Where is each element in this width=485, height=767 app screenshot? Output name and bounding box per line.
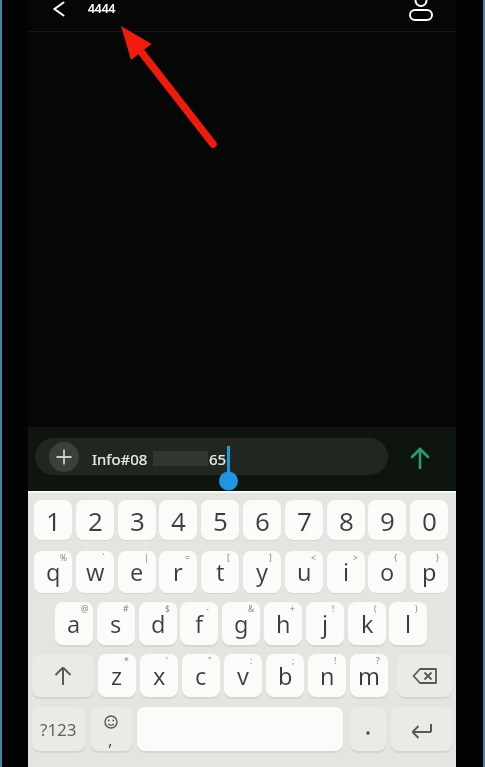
button[interactable] bbox=[397, 654, 452, 697]
button[interactable] bbox=[350, 707, 386, 751]
staticText: x bbox=[153, 660, 166, 692]
button[interactable]: w bbox=[76, 551, 114, 593]
staticText: ! bbox=[332, 603, 335, 615]
staticText: a bbox=[67, 608, 81, 640]
button[interactable]: s bbox=[97, 602, 135, 645]
staticText: > bbox=[353, 552, 358, 564]
button[interactable]: h bbox=[264, 602, 302, 645]
staticText: | bbox=[144, 552, 149, 564]
button[interactable] bbox=[391, 707, 452, 751]
staticText: 0 bbox=[422, 503, 437, 538]
button[interactable]: n bbox=[308, 654, 346, 697]
staticText: + bbox=[290, 603, 295, 615]
button[interactable] bbox=[32, 654, 94, 697]
staticText: * bbox=[124, 655, 129, 667]
staticText: i bbox=[343, 556, 350, 588]
button[interactable]: y bbox=[243, 551, 281, 593]
button[interactable] bbox=[406, 444, 434, 472]
staticText: } bbox=[436, 552, 440, 564]
button[interactable]: b bbox=[266, 654, 304, 697]
button[interactable]: d bbox=[139, 602, 177, 645]
button[interactable]: i bbox=[327, 551, 365, 593]
button[interactable]: a bbox=[55, 602, 93, 645]
button[interactable]: 5 bbox=[201, 500, 239, 540]
button[interactable]: 9 bbox=[368, 500, 406, 540]
staticText: f bbox=[195, 608, 204, 640]
staticText: ] bbox=[269, 552, 272, 564]
button[interactable] bbox=[50, 0, 70, 20]
staticText: 4444 bbox=[88, 0, 116, 16]
staticText: h bbox=[276, 608, 291, 640]
staticText: t bbox=[216, 556, 225, 588]
staticText: 4 bbox=[171, 503, 186, 538]
staticText: z bbox=[111, 660, 123, 692]
button[interactable]: 6 bbox=[243, 500, 281, 540]
staticText: ! bbox=[334, 655, 337, 667]
button[interactable]: 7 bbox=[285, 500, 323, 540]
staticText: " bbox=[208, 655, 212, 667]
staticText: = bbox=[185, 552, 190, 564]
button[interactable]: 4 bbox=[159, 500, 197, 540]
button[interactable]: f bbox=[180, 602, 218, 645]
button[interactable]: q bbox=[34, 551, 72, 593]
button[interactable]: k bbox=[348, 602, 386, 645]
staticText: 3 bbox=[130, 503, 145, 538]
staticText: < bbox=[311, 552, 316, 564]
staticText: u bbox=[297, 556, 312, 588]
staticText: # bbox=[123, 603, 129, 615]
button[interactable]: o bbox=[368, 551, 406, 593]
staticText: r bbox=[173, 556, 183, 588]
button[interactable]: 0 bbox=[410, 500, 448, 540]
button[interactable] bbox=[35, 438, 388, 475]
staticText: ` bbox=[102, 552, 105, 564]
staticText: ( bbox=[374, 603, 377, 615]
staticText: 6 bbox=[255, 503, 270, 538]
staticText: k bbox=[361, 608, 374, 640]
staticText: w bbox=[86, 556, 105, 588]
staticText: 9 bbox=[380, 503, 395, 538]
button[interactable]: ?123 bbox=[32, 707, 85, 751]
staticText: 1 bbox=[46, 503, 61, 538]
staticText: : bbox=[250, 655, 253, 667]
staticText: n bbox=[320, 660, 335, 692]
button[interactable]: x bbox=[140, 654, 178, 697]
staticText: l bbox=[405, 608, 412, 640]
staticText: $ bbox=[165, 603, 170, 615]
button[interactable]: t bbox=[201, 551, 239, 593]
staticText: s bbox=[110, 608, 122, 640]
staticText: % bbox=[60, 552, 68, 564]
button[interactable]: c bbox=[182, 654, 220, 697]
staticText: g bbox=[234, 608, 249, 640]
button[interactable]: 8 bbox=[327, 500, 365, 540]
button[interactable]: l bbox=[389, 602, 427, 645]
button[interactable]: g bbox=[222, 602, 260, 645]
button[interactable]: 1 bbox=[34, 500, 72, 540]
button[interactable]: 3 bbox=[118, 500, 156, 540]
staticText: & bbox=[248, 603, 255, 615]
staticText: d bbox=[151, 608, 166, 640]
button[interactable]: r bbox=[159, 551, 197, 593]
button[interactable]: m bbox=[350, 654, 388, 697]
staticText: ? bbox=[376, 655, 380, 667]
button[interactable]: e bbox=[118, 551, 156, 593]
button[interactable]: v bbox=[224, 654, 262, 697]
staticText: 65 bbox=[209, 449, 227, 469]
staticText: v bbox=[237, 660, 249, 692]
staticText: e bbox=[130, 556, 144, 588]
staticText: , bbox=[108, 728, 113, 751]
button[interactable]: p bbox=[410, 551, 448, 593]
staticText: 2 bbox=[88, 503, 103, 538]
button[interactable] bbox=[405, 0, 437, 24]
button[interactable]: z bbox=[98, 654, 136, 697]
staticText: q bbox=[46, 556, 61, 588]
button[interactable]: j bbox=[306, 602, 344, 645]
button[interactable]: , bbox=[91, 707, 132, 751]
staticText: [ bbox=[227, 552, 230, 564]
staticText: ; bbox=[292, 655, 295, 667]
button[interactable]: 2 bbox=[76, 500, 114, 540]
button[interactable]: u bbox=[285, 551, 323, 593]
button[interactable] bbox=[49, 442, 79, 472]
staticText: Info#08 bbox=[92, 449, 148, 469]
staticText: ) bbox=[415, 603, 418, 615]
